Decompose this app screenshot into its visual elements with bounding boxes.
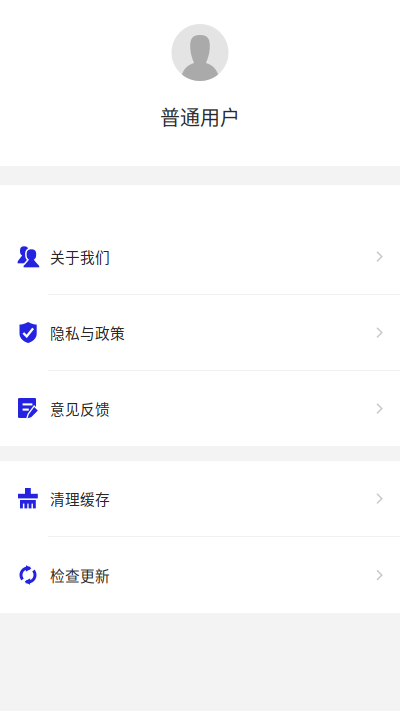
staticText: 清理缓存 [50,488,110,509]
button[interactable]: 意见反馈 [0,371,400,446]
staticText: 意见反馈 [50,398,110,419]
button[interactable]: 关于我们 [0,219,400,294]
button[interactable]: 清理缓存 [0,461,400,536]
button[interactable]: 检查更新 [0,537,400,613]
staticText: 普通用户 [160,102,240,131]
staticText: 检查更新 [50,564,110,586]
button[interactable]: 隐私与政策 [0,295,400,370]
staticText: 隐私与政策 [50,322,125,343]
staticText: 关于我们 [50,246,110,267]
